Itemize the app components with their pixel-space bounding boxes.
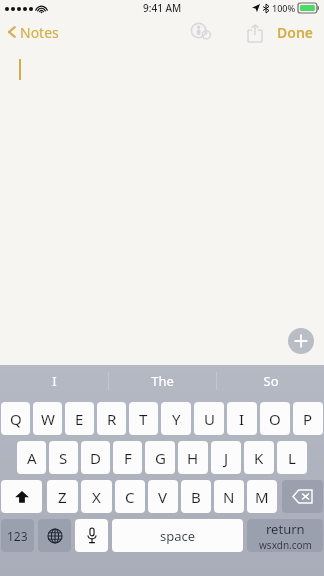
button[interactable]: C <box>115 480 145 513</box>
staticText: Done <box>277 23 314 42</box>
button[interactable]: Done <box>267 16 324 48</box>
staticText: So <box>263 372 279 390</box>
button[interactable]: L <box>277 441 307 474</box>
staticText: N <box>223 487 235 507</box>
staticText: L <box>288 448 296 468</box>
button[interactable]: A <box>17 441 46 474</box>
staticText: J <box>224 448 229 468</box>
button[interactable]: P <box>293 402 323 435</box>
button[interactable]: K <box>244 441 274 474</box>
button[interactable]: X <box>81 480 112 513</box>
staticText: B <box>191 487 201 507</box>
button[interactable]: Backspace <box>282 480 323 513</box>
button[interactable]: The <box>109 365 216 396</box>
staticText: G <box>155 448 166 468</box>
staticText: return <box>266 520 305 538</box>
staticText: H <box>187 448 199 468</box>
button[interactable]: H <box>178 441 208 474</box>
button[interactable]: S <box>49 441 78 474</box>
button[interactable]: Add attachment <box>288 328 314 354</box>
button[interactable]: T <box>129 402 158 435</box>
staticText: V <box>158 487 168 507</box>
button[interactable]: 123 <box>1 519 34 552</box>
button[interactable]: Share <box>240 17 270 47</box>
staticText: R <box>107 409 117 429</box>
button[interactable]: space <box>112 519 243 552</box>
staticText: O <box>269 409 281 429</box>
button[interactable]: Switch keyboard <box>38 519 71 552</box>
button[interactable]: B <box>181 480 211 513</box>
staticText: X <box>92 487 101 507</box>
staticText: Z <box>58 487 67 507</box>
button[interactable]: Q <box>1 402 30 435</box>
button[interactable]: D <box>81 441 110 474</box>
button[interactable]: O <box>260 402 290 435</box>
button[interactable]: So <box>217 365 324 396</box>
staticText: F <box>124 448 132 468</box>
staticText: Y <box>172 409 181 429</box>
staticText: M <box>255 487 269 507</box>
staticText: U <box>204 409 215 429</box>
button[interactable]: I <box>227 402 257 435</box>
button[interactable]: W <box>33 402 62 435</box>
staticText: space <box>160 527 196 545</box>
button[interactable]: J <box>211 441 241 474</box>
button[interactable]: Shift <box>1 480 42 513</box>
button[interactable]: F <box>113 441 142 474</box>
button[interactable]: E <box>65 402 94 435</box>
button[interactable]: G <box>145 441 175 474</box>
staticText: 9:41 AM <box>143 1 182 15</box>
button[interactable]: I <box>0 365 108 396</box>
staticText: T <box>139 409 148 429</box>
staticText: D <box>90 448 101 468</box>
button[interactable]: Y <box>161 402 191 435</box>
button[interactable]: R <box>97 402 126 435</box>
staticText: I <box>239 409 245 429</box>
staticText: Notes <box>20 23 59 42</box>
staticText: E <box>75 409 84 429</box>
button[interactable]: V <box>148 480 178 513</box>
staticText: K <box>254 448 264 468</box>
button[interactable]: M <box>247 480 277 513</box>
staticText: 100% <box>272 2 296 14</box>
staticText: P <box>303 409 313 429</box>
staticText: I <box>52 372 57 390</box>
button[interactable]: Collaborate <box>186 17 216 47</box>
staticText: Q <box>10 409 22 429</box>
button[interactable]: Z <box>47 480 78 513</box>
button[interactable]: Dictate <box>75 519 108 552</box>
button[interactable]: return <box>247 519 323 552</box>
staticText: The <box>151 372 174 390</box>
button[interactable]: Notes <box>0 16 67 48</box>
staticText: W <box>41 409 55 429</box>
staticText: C <box>125 487 135 507</box>
button[interactable]: U <box>194 402 224 435</box>
staticText: S <box>59 448 68 468</box>
button[interactable]: N <box>214 480 244 513</box>
staticText: wsxdn.com <box>259 538 312 552</box>
staticText: A <box>27 448 37 468</box>
staticText: 123 <box>7 528 28 544</box>
